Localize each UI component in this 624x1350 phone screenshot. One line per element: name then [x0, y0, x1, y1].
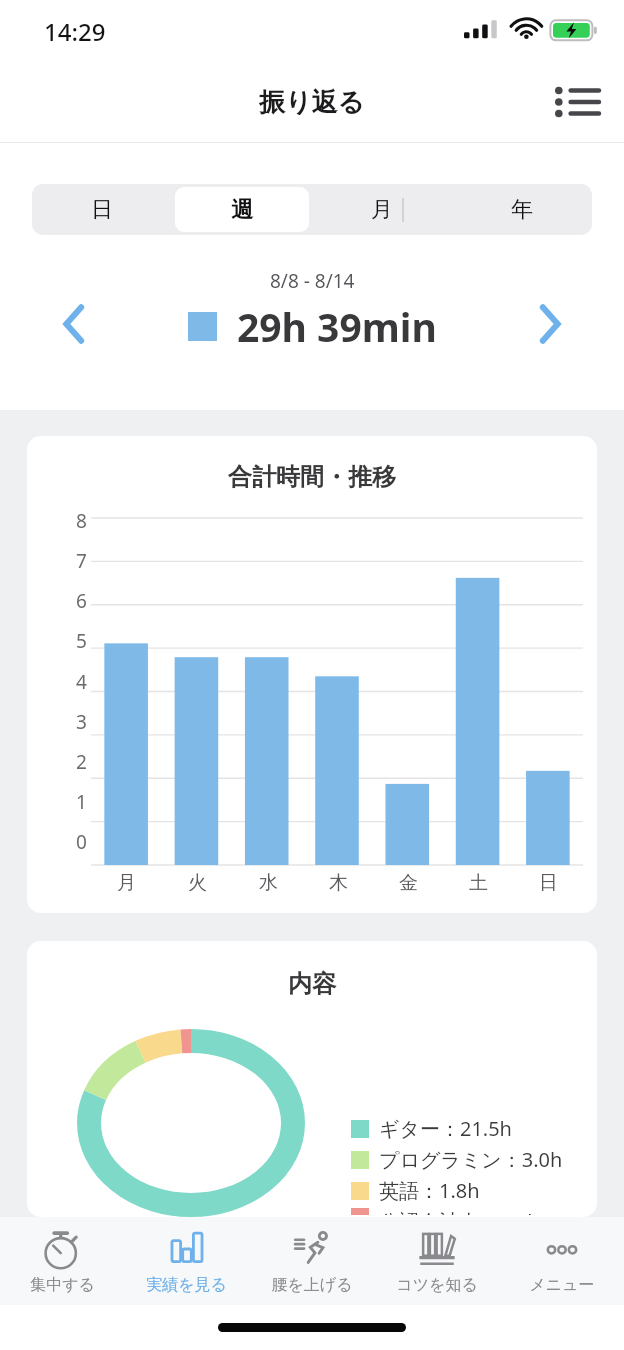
- staticText: 4: [76, 669, 87, 695]
- staticText: 14:29: [44, 15, 106, 48]
- staticText: 集中する: [30, 1275, 95, 1295]
- staticText: 0: [76, 829, 87, 855]
- staticText: 8/8 - 8/14: [270, 268, 355, 294]
- staticText: 日: [539, 871, 558, 895]
- staticText: 振り返る: [259, 86, 365, 119]
- staticText: 29h 39min: [237, 300, 437, 353]
- button[interactable]: 月: [315, 187, 449, 232]
- button[interactable]: 週: [175, 187, 309, 232]
- staticText: 年: [511, 196, 533, 224]
- button[interactable]: 年: [455, 187, 589, 232]
- staticText: 英語：1.8h: [379, 1177, 480, 1204]
- staticText: 腰を上げる: [271, 1275, 353, 1295]
- staticText: 日: [91, 196, 113, 224]
- staticText: 週: [231, 196, 253, 224]
- staticText: 土: [469, 871, 488, 895]
- button[interactable]: 集中する: [0, 1217, 124, 1305]
- staticText: 2: [76, 749, 87, 775]
- button[interactable]: メニュー: [499, 1217, 624, 1305]
- staticText: 6: [76, 588, 87, 614]
- staticText: 実績を見る: [146, 1275, 227, 1295]
- staticText: 3: [76, 709, 87, 735]
- staticText: 金: [399, 871, 418, 895]
- button[interactable]: List options: [548, 73, 606, 131]
- staticText: 木: [329, 871, 348, 895]
- staticText: 内容: [288, 969, 336, 999]
- staticText: 火: [188, 871, 207, 895]
- button[interactable]: 日: [35, 187, 169, 232]
- button[interactable]: 合計時間・推移: [27, 436, 597, 913]
- staticText: 7: [76, 548, 87, 574]
- button[interactable]: Previous period: [46, 296, 102, 352]
- button[interactable]: コツを知る: [374, 1217, 499, 1305]
- staticText: メニュー: [529, 1275, 595, 1295]
- staticText: 水: [259, 871, 278, 895]
- staticText: 公認会計士：0.4h: [379, 1208, 540, 1215]
- staticText: ギター：21.5h: [379, 1115, 512, 1142]
- staticText: 5: [76, 628, 87, 654]
- staticText: 8: [76, 508, 87, 534]
- staticText: 月: [117, 871, 136, 895]
- staticText: 1: [76, 789, 87, 815]
- staticText: 月: [371, 196, 393, 224]
- button[interactable]: 腰を上げる: [249, 1217, 374, 1305]
- staticText: プログラミン：3.0h: [379, 1146, 563, 1173]
- staticText: 合計時間・推移: [228, 462, 396, 492]
- button[interactable]: Next period: [522, 296, 578, 352]
- button[interactable]: 実績を見る: [124, 1217, 249, 1305]
- staticText: コツを知る: [396, 1275, 478, 1295]
- button[interactable]: 内容: [27, 941, 597, 1217]
